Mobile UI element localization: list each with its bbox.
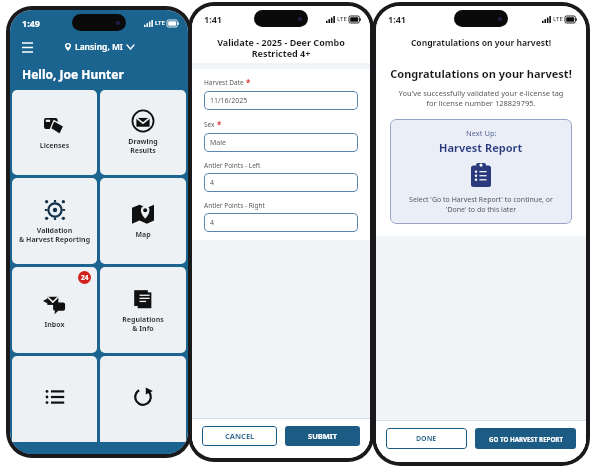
button[interactable]: SUBMIT	[285, 426, 360, 446]
staticText: Next Up:	[466, 128, 497, 138]
staticText: CANCEL	[225, 431, 255, 441]
button[interactable]: Refresh	[100, 356, 186, 442]
button[interactable]: Drawing Results	[100, 90, 186, 175]
staticText: Lansing, MI	[75, 41, 124, 53]
button[interactable]: Lansing, MI	[64, 41, 134, 53]
staticText: LTE	[553, 15, 563, 23]
button[interactable]: CANCEL	[202, 426, 277, 446]
staticText: Antler Points - Right	[204, 201, 265, 210]
staticText: GO TO HARVEST REPORT	[489, 435, 563, 443]
staticText: LTE	[155, 19, 165, 27]
button[interactable]: Regulations & Info	[100, 267, 186, 353]
staticText: Validate - 2025 - Deer Combo Restricted …	[204, 36, 358, 59]
staticText: Congratulations on your harvest!	[376, 37, 586, 49]
staticText: Regulations & Info	[102, 315, 184, 333]
button[interactable]: Inbox	[12, 267, 97, 353]
staticText: Sex	[204, 120, 215, 129]
staticText: 1:49	[22, 17, 40, 29]
staticText: *	[246, 77, 251, 88]
staticText: Male	[210, 138, 227, 148]
button[interactable]: 4	[210, 173, 358, 192]
staticText: Licenses	[14, 141, 95, 151]
staticText: 11/16/2025	[210, 96, 248, 106]
staticText: Harvest Report	[439, 140, 523, 155]
staticText: SUBMIT	[308, 431, 338, 441]
button[interactable]: Male	[210, 133, 358, 152]
button[interactable]: Menu	[19, 39, 35, 55]
staticText: 4	[210, 178, 215, 188]
staticText: Harvest Date	[204, 78, 244, 87]
staticText: Map	[102, 230, 184, 240]
button[interactable]: List	[12, 356, 97, 442]
staticText: Antler Points - Left	[204, 161, 261, 170]
button[interactable]: 11/16/2025	[210, 91, 358, 110]
staticText: 1:41	[204, 13, 222, 25]
button[interactable]: DONE	[386, 428, 467, 449]
staticText: Drawing Results	[102, 137, 184, 155]
button[interactable]: Validation & Harvest Reporting	[12, 178, 97, 264]
staticText: Hello, Joe Hunter	[22, 66, 124, 82]
staticText: *	[217, 119, 222, 130]
staticText: Select 'Go to Harvest Report' to continu…	[398, 195, 564, 215]
button[interactable]: Map	[100, 178, 186, 264]
staticText: 4	[210, 218, 215, 228]
button[interactable]: 4	[210, 213, 358, 232]
staticText: 1:41	[388, 13, 406, 25]
button[interactable]: Next Up:	[398, 128, 564, 215]
button[interactable]: GO TO HARVEST REPORT	[475, 428, 576, 449]
staticText: DONE	[416, 434, 437, 444]
staticText: Inbox	[14, 320, 95, 330]
staticText: 24	[81, 273, 89, 282]
staticText: Congratulations on your harvest!	[390, 66, 572, 81]
staticText: LTE	[337, 15, 347, 23]
staticText: You've successfully validated your e-lic…	[396, 88, 566, 108]
staticText: Validation & Harvest Reporting	[14, 226, 95, 244]
button[interactable]: Licenses	[12, 90, 97, 175]
